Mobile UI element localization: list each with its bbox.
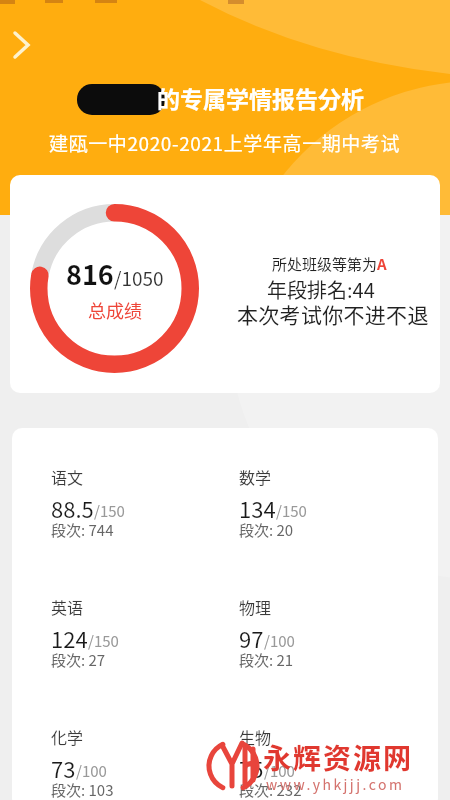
button[interactable] bbox=[4, 26, 40, 62]
staticText: 建瓯一中2020-2021上学年高一期中考试 bbox=[49, 129, 401, 157]
staticText: /100 bbox=[76, 760, 107, 782]
staticText: 的专属学情报告分析 bbox=[157, 81, 364, 114]
staticText: 语文 bbox=[51, 465, 84, 488]
staticText: 段次: 27 bbox=[51, 649, 106, 671]
staticText: 段次: 21 bbox=[239, 649, 294, 671]
staticText: 物理 bbox=[239, 595, 272, 618]
button[interactable]: 化学 bbox=[51, 725, 201, 800]
staticText: 段次: 20 bbox=[239, 519, 294, 541]
staticText: 本次考试你不进不退 bbox=[237, 299, 429, 329]
staticText: /150 bbox=[88, 630, 119, 652]
button[interactable]: 英语 bbox=[51, 595, 201, 687]
staticText: 永辉资源网 bbox=[263, 737, 414, 778]
staticText: 88.5 bbox=[51, 492, 94, 524]
staticText: /150 bbox=[94, 500, 125, 522]
staticText: /100 bbox=[264, 760, 295, 782]
button[interactable]: 语文 bbox=[51, 465, 201, 557]
staticText: 所处班级等第为A bbox=[272, 253, 387, 275]
staticText: 段次: 103 bbox=[51, 779, 114, 800]
staticText: /100 bbox=[264, 630, 295, 652]
staticText: 段次: 744 bbox=[51, 519, 114, 541]
staticText: 816 bbox=[66, 254, 114, 293]
button[interactable]: 数学 bbox=[239, 465, 389, 557]
staticText: 124 bbox=[51, 622, 88, 654]
staticText: 英语 bbox=[51, 595, 84, 618]
staticText: 总成绩 bbox=[88, 297, 142, 323]
staticText: 97 bbox=[239, 622, 264, 654]
staticText: 化学 bbox=[51, 725, 84, 748]
staticText: 75 bbox=[239, 752, 264, 784]
staticText: 段次: 232 bbox=[239, 779, 302, 800]
staticText: 数学 bbox=[239, 465, 272, 488]
staticText: /150 bbox=[276, 500, 307, 522]
button[interactable]: 物理 bbox=[239, 595, 389, 687]
button[interactable]: 生物 bbox=[239, 725, 389, 800]
staticText: 134 bbox=[239, 492, 276, 524]
staticText: 年段排名:44 bbox=[267, 275, 375, 304]
staticText: 73 bbox=[51, 752, 76, 784]
staticText: 生物 bbox=[239, 725, 272, 748]
staticText: /1050 bbox=[114, 264, 164, 292]
staticText: www.yhkjjj.com bbox=[266, 774, 405, 794]
